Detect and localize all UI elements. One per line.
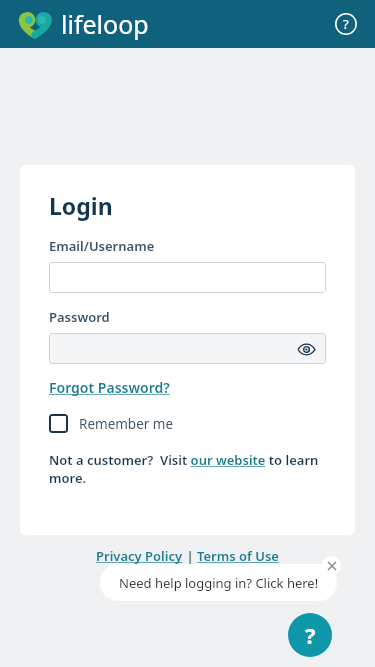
button[interactable]: Forgot Password?	[49, 378, 170, 397]
button[interactable]: Password field	[49, 333, 326, 364]
button[interactable]: Terms of Use	[197, 547, 279, 565]
staticText: Email/Username	[49, 237, 155, 255]
button[interactable]: Need help logging in? Click here!	[100, 564, 337, 601]
staticText: Terms of Use	[197, 547, 279, 565]
staticText: lifeloop	[61, 7, 149, 41]
staticText: Need help logging in? Click here!	[119, 574, 319, 592]
staticText: Privacy Policy	[96, 547, 183, 565]
button[interactable]: Close	[322, 556, 341, 575]
staticText: Not a customer? Visit our website to lea…	[49, 451, 326, 487]
staticText: Login	[49, 190, 113, 221]
staticText: ?	[305, 620, 316, 650]
button[interactable]: Help chat	[288, 613, 332, 657]
staticText: Password	[49, 308, 110, 326]
button[interactable]: Remember me	[49, 414, 174, 433]
staticText: ?	[343, 15, 349, 33]
staticText: Remember me	[79, 415, 174, 433]
button[interactable]: Show password	[295, 338, 317, 360]
button[interactable]: Email or username field	[49, 262, 326, 293]
button[interactable]: Help	[330, 8, 362, 40]
staticText: Forgot Password?	[49, 378, 170, 397]
button[interactable]: Privacy Policy	[96, 547, 183, 565]
staticText: |	[183, 547, 197, 565]
